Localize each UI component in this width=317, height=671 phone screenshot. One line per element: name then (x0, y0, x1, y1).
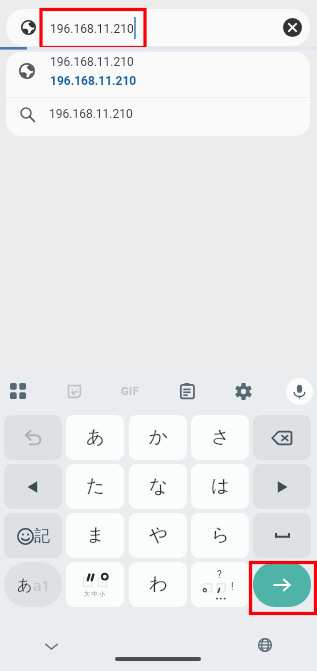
button[interactable]: ? (191, 562, 249, 607)
button[interactable]: た (66, 464, 124, 509)
button[interactable]: Backspace (253, 415, 311, 460)
staticText: 記 (34, 526, 50, 546)
button[interactable]: Site information (16, 15, 40, 39)
button[interactable]: 大 中 小 (66, 562, 124, 607)
button[interactable]: Clear text (280, 15, 305, 40)
staticText: ? (217, 569, 222, 581)
staticText: 大 中 小 (84, 590, 105, 598)
button[interactable]: か (129, 415, 187, 460)
button[interactable]: Clipboard (169, 373, 205, 409)
button[interactable]: Undo (4, 415, 62, 460)
staticText: は (211, 474, 230, 497)
button[interactable]: Voice input (281, 373, 317, 409)
staticText: 196.168.11.210 (49, 107, 133, 121)
staticText: ま (86, 523, 105, 546)
staticText: GIF (121, 385, 140, 398)
button[interactable]: Move cursor left (4, 464, 62, 509)
button[interactable]: Settings (225, 373, 261, 409)
button[interactable]: は (191, 464, 249, 509)
button[interactable]: さ (191, 415, 249, 460)
staticText: 196.168.11.210 (50, 55, 134, 69)
staticText: ら (211, 523, 230, 546)
staticText: あ (86, 425, 105, 448)
staticText: や (149, 523, 168, 546)
button[interactable]: わ (129, 562, 187, 607)
button[interactable]: Change input language (252, 632, 278, 658)
staticText: 196.168.11.210 (50, 22, 134, 36)
button[interactable]: あ (66, 415, 124, 460)
staticText: さ (211, 425, 230, 448)
button[interactable]: Stickers (56, 373, 92, 409)
button[interactable]: Move cursor right (253, 464, 311, 509)
button[interactable]: あ (4, 562, 62, 607)
staticText: あ (17, 576, 33, 595)
staticText: 196.168.11.210 (50, 74, 137, 88)
staticText: ! (231, 581, 234, 593)
button[interactable]: Hide keyboard (38, 633, 64, 659)
button[interactable]: ら (191, 513, 249, 558)
button[interactable] (6, 52, 310, 97)
staticText: か (149, 425, 168, 448)
button[interactable]: ま (66, 513, 124, 558)
button[interactable]: 記 (4, 513, 62, 558)
button[interactable]: Apps (0, 373, 36, 409)
button[interactable] (6, 98, 310, 136)
button[interactable]: Enter (253, 562, 311, 607)
button[interactable] (6, 9, 310, 46)
button[interactable]: や (129, 513, 187, 558)
button[interactable]: GIF (112, 373, 148, 409)
button[interactable]: Space (253, 513, 311, 558)
staticText: な (149, 474, 168, 497)
staticText: た (86, 474, 105, 497)
staticText: わ (149, 572, 168, 595)
staticText: a1 (33, 575, 50, 595)
button[interactable]: な (129, 464, 187, 509)
